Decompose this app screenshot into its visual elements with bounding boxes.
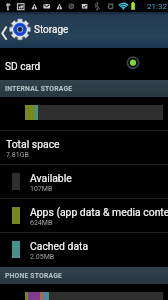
button[interactable]: Apps (app data & media content) <box>0 199 168 232</box>
staticText: 7.81GB <box>6 151 29 159</box>
staticText: 107MB <box>30 185 53 193</box>
button[interactable]: Total space <box>0 131 168 164</box>
button[interactable]: Available <box>0 165 168 198</box>
staticText: Cached data <box>30 240 89 252</box>
button[interactable]: Cached data <box>0 233 168 266</box>
other: SD card selected <box>126 57 140 71</box>
button[interactable]: Navigate up <box>0 12 168 48</box>
staticText: SD card <box>5 61 41 73</box>
staticText: Storage <box>34 24 69 36</box>
staticText: 21:32 <box>147 2 167 11</box>
staticText: Apps (app data & media content) <box>30 206 168 218</box>
staticText: 2.05MB <box>30 253 55 261</box>
staticText: 624MB <box>30 219 53 227</box>
staticText: INTERNAL STORAGE <box>5 85 73 93</box>
staticText: Available <box>30 172 72 184</box>
staticText: PHONE STORAGE <box>5 272 63 280</box>
staticText: Total space <box>6 138 60 150</box>
other: Navigate up <box>0 12 9 48</box>
button[interactable]: SD card <box>0 48 168 80</box>
